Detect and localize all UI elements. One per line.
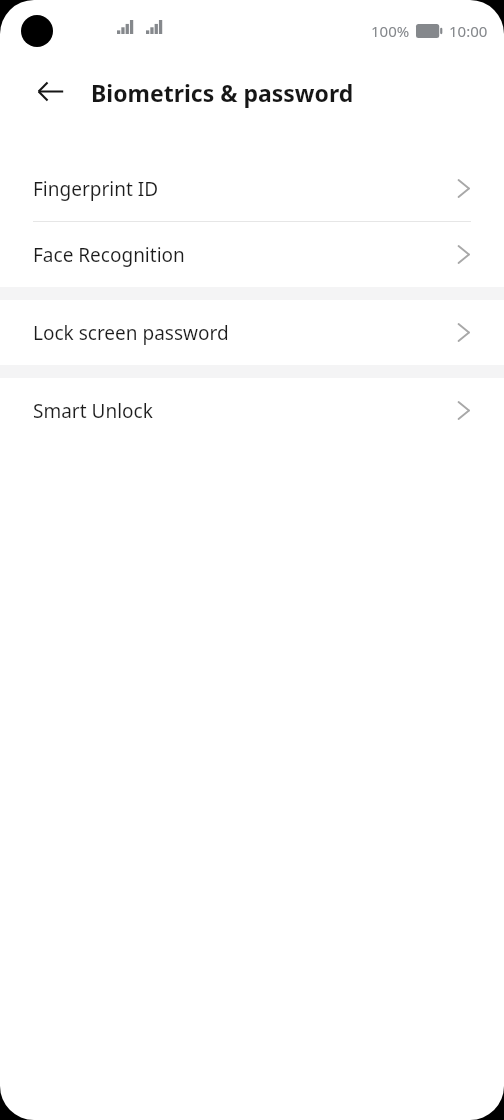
- staticText: 10:00: [449, 21, 488, 41]
- staticText: Fingerprint ID: [33, 176, 159, 202]
- staticText: Lock screen password: [33, 320, 229, 346]
- staticText: Face Recognition: [33, 242, 185, 268]
- button[interactable]: Face Recognition: [0, 222, 504, 287]
- staticText: 100%: [371, 21, 410, 41]
- button[interactable]: Lock screen password: [0, 300, 504, 365]
- staticText: Smart Unlock: [33, 398, 153, 424]
- button[interactable]: Smart Unlock: [0, 378, 504, 443]
- staticText: Biometrics & password: [91, 77, 354, 108]
- button[interactable]: Back: [22, 63, 78, 119]
- button[interactable]: Fingerprint ID: [0, 156, 504, 221]
